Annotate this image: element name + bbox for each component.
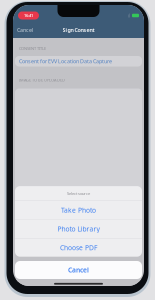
button[interactable]: Consent for EVV Location Data Capture [15,56,142,66]
button[interactable]: Cancel [15,261,142,279]
staticText: CONSENT TITLE [19,46,46,51]
staticText: ıl [128,12,130,19]
staticText: 16:41 [24,13,33,18]
staticText: Cancel [17,26,33,34]
staticText: Take Photo [61,206,96,215]
button[interactable]: Take Photo [15,201,142,219]
staticText: IMAGE TO BE UPLOADED [19,77,65,83]
button[interactable]: Choose PDF [15,238,142,257]
staticText: Consent for EVV Location Data Capture [19,58,112,65]
staticText: Select source [67,191,90,196]
button[interactable]: Photo Library [15,220,142,238]
staticText: Cancel [68,266,89,274]
button[interactable]: Cancel [17,26,33,34]
staticText: Choose PDF [60,243,97,252]
staticText: Sign Consent [62,26,94,34]
staticText: Photo Library [57,224,99,233]
